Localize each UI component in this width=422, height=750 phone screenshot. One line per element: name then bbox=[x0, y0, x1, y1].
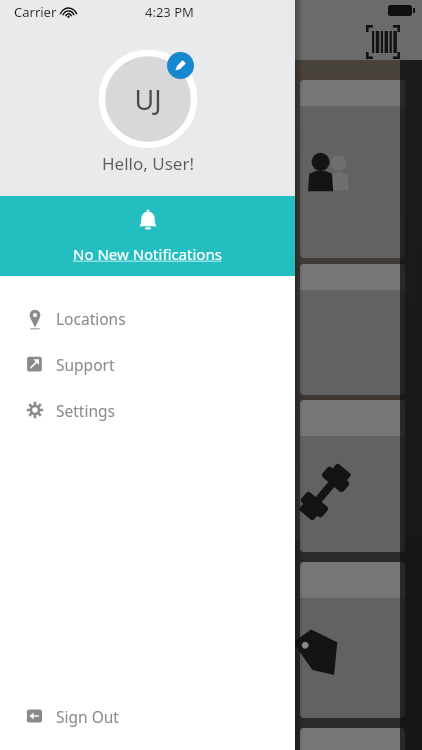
staticText: UJ bbox=[134, 81, 162, 118]
staticText: 4:23 PM bbox=[145, 3, 194, 21]
staticText: Carrier bbox=[14, 3, 57, 21]
button[interactable]: Settings bbox=[0, 387, 295, 433]
button[interactable]: Edit profile photo bbox=[100, 51, 196, 147]
button[interactable]: Locations bbox=[0, 295, 295, 341]
button[interactable]: Support bbox=[0, 341, 295, 387]
button[interactable]: No New Notifications bbox=[0, 196, 295, 276]
staticText: No New Notifications bbox=[73, 244, 222, 264]
staticText: Sign Out bbox=[56, 706, 119, 727]
staticText: Support bbox=[56, 354, 115, 375]
staticText: Settings bbox=[56, 400, 115, 421]
staticText: Locations bbox=[56, 308, 126, 329]
button[interactable]: Sign Out bbox=[0, 693, 295, 739]
staticText: Hello, User! bbox=[102, 152, 194, 175]
